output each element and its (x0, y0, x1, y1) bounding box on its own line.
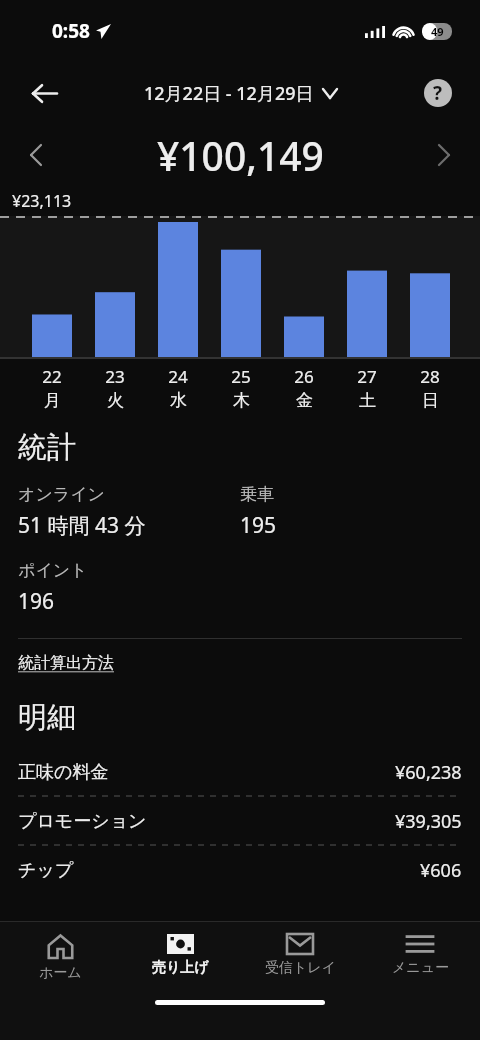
staticText: 正味の料金 (18, 761, 109, 784)
staticText: ¥100,149 (157, 129, 324, 182)
button[interactable]: 受信トレイ (240, 922, 360, 992)
button[interactable]: 正味の料金 (18, 748, 462, 796)
staticText: 受信トレイ (265, 959, 336, 977)
staticText: 0:58 (52, 18, 90, 44)
staticText: メニュー (392, 959, 449, 977)
staticText: 196 (18, 587, 55, 616)
staticText: 23 (105, 365, 125, 388)
button[interactable]: Previous week (14, 133, 58, 177)
staticText: ¥60,238 (395, 760, 462, 785)
button[interactable]: ホーム (0, 922, 120, 992)
staticText: ¥606 (420, 858, 462, 883)
staticText: 木 (233, 390, 250, 411)
button[interactable]: プロモーション (18, 797, 462, 845)
staticText: ポイント (18, 560, 88, 581)
staticText: 火 (107, 390, 124, 411)
staticText: 統計 (18, 429, 76, 466)
button[interactable]: 売り上げ (120, 922, 240, 992)
staticText: 25 (231, 365, 251, 388)
staticText: 土 (359, 390, 376, 411)
staticText: 22 (42, 365, 62, 388)
staticText: オンライン (18, 484, 105, 505)
staticText: 乗車 (240, 484, 274, 505)
staticText: ホーム (39, 964, 82, 982)
button[interactable]: チップ (18, 846, 462, 894)
staticText: 水 (170, 390, 187, 411)
button[interactable]: Next week (422, 133, 466, 177)
button[interactable]: Help (418, 73, 458, 113)
staticText: プロモーション (18, 810, 147, 833)
button[interactable]: Back (20, 69, 68, 117)
staticText: ? (433, 80, 443, 106)
staticText: 売り上げ (152, 959, 209, 977)
staticText: 28 (420, 365, 440, 388)
staticText: 統計算出方法 (18, 653, 114, 673)
staticText: 195 (240, 511, 277, 540)
staticText: ¥23,113 (12, 190, 72, 212)
staticText: 49 (431, 24, 444, 39)
button[interactable]: メニュー (360, 922, 480, 992)
staticText: 12月22日 - 12月29日 (144, 81, 314, 106)
staticText: 金 (296, 390, 313, 411)
staticText: チップ (18, 859, 74, 882)
staticText: 明細 (18, 699, 76, 736)
button[interactable]: 12月22日 - 12月29日 (138, 77, 343, 110)
staticText: 24 (168, 365, 188, 388)
button[interactable]: 統計算出方法 (18, 653, 114, 673)
staticText: 51 時間 43 分 (18, 511, 146, 540)
staticText: 27 (357, 365, 377, 388)
staticText: 日 (422, 390, 439, 411)
staticText: ¥39,305 (395, 809, 462, 834)
staticText: 26 (294, 365, 314, 388)
staticText: 月 (44, 390, 61, 411)
